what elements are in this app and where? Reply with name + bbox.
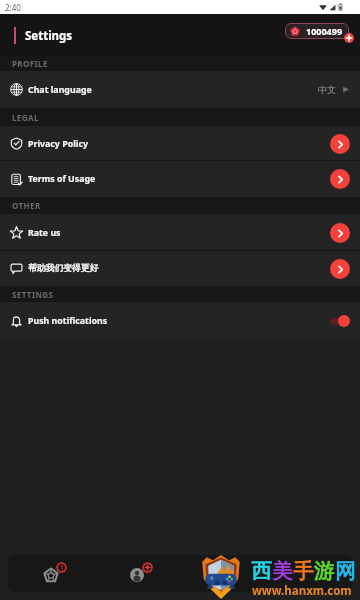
staticText: Push notifications (28, 315, 108, 327)
button[interactable]: Chat (180, 555, 266, 592)
button[interactable]: Chat language (0, 71, 360, 108)
staticText: Privacy Policy (28, 138, 88, 150)
staticText: www.hanxm.com (252, 583, 352, 599)
button[interactable]: Push notifications (0, 302, 360, 340)
staticText: 中文 (318, 84, 336, 95)
button[interactable]: Add coins (344, 33, 354, 43)
staticText: 美 (272, 558, 293, 584)
staticText: 西 (251, 558, 272, 584)
button[interactable]: Terms of Usage (0, 161, 360, 197)
button[interactable]: Clan (8, 555, 94, 592)
button[interactable]: Open (330, 169, 350, 189)
button[interactable]: Open (330, 223, 350, 243)
staticText: LEGAL (12, 112, 39, 123)
staticText: 2:40 (5, 2, 21, 13)
button[interactable]: Rate us (0, 214, 360, 251)
button[interactable]: Privacy Policy (0, 126, 360, 161)
staticText: Settings (25, 28, 73, 44)
staticText: 游 (314, 558, 335, 584)
button[interactable]: Push notifications toggle (330, 314, 350, 328)
staticText: 1 (60, 563, 64, 572)
button[interactable]: 中文 (318, 84, 350, 95)
button[interactable]: 1000499 (285, 23, 349, 39)
staticText: PROFILE (12, 58, 48, 69)
button[interactable]: Settings (266, 555, 352, 592)
staticText: Rate us (28, 227, 61, 239)
staticText: SETTINGS (12, 289, 54, 300)
button[interactable]: Profile (94, 555, 180, 592)
button[interactable]: Open (330, 259, 350, 279)
staticText: Terms of Usage (28, 173, 96, 185)
staticText: 手 (293, 558, 314, 584)
staticText: OTHER (12, 200, 41, 211)
button[interactable]: 帮助我们变得更好 (0, 251, 360, 286)
staticText: Chat language (28, 84, 92, 96)
staticText: 1000499 (306, 25, 343, 37)
staticText: 网 (335, 558, 356, 584)
staticText: 帮助我们变得更好 (28, 263, 99, 274)
button[interactable]: Open (330, 134, 350, 154)
